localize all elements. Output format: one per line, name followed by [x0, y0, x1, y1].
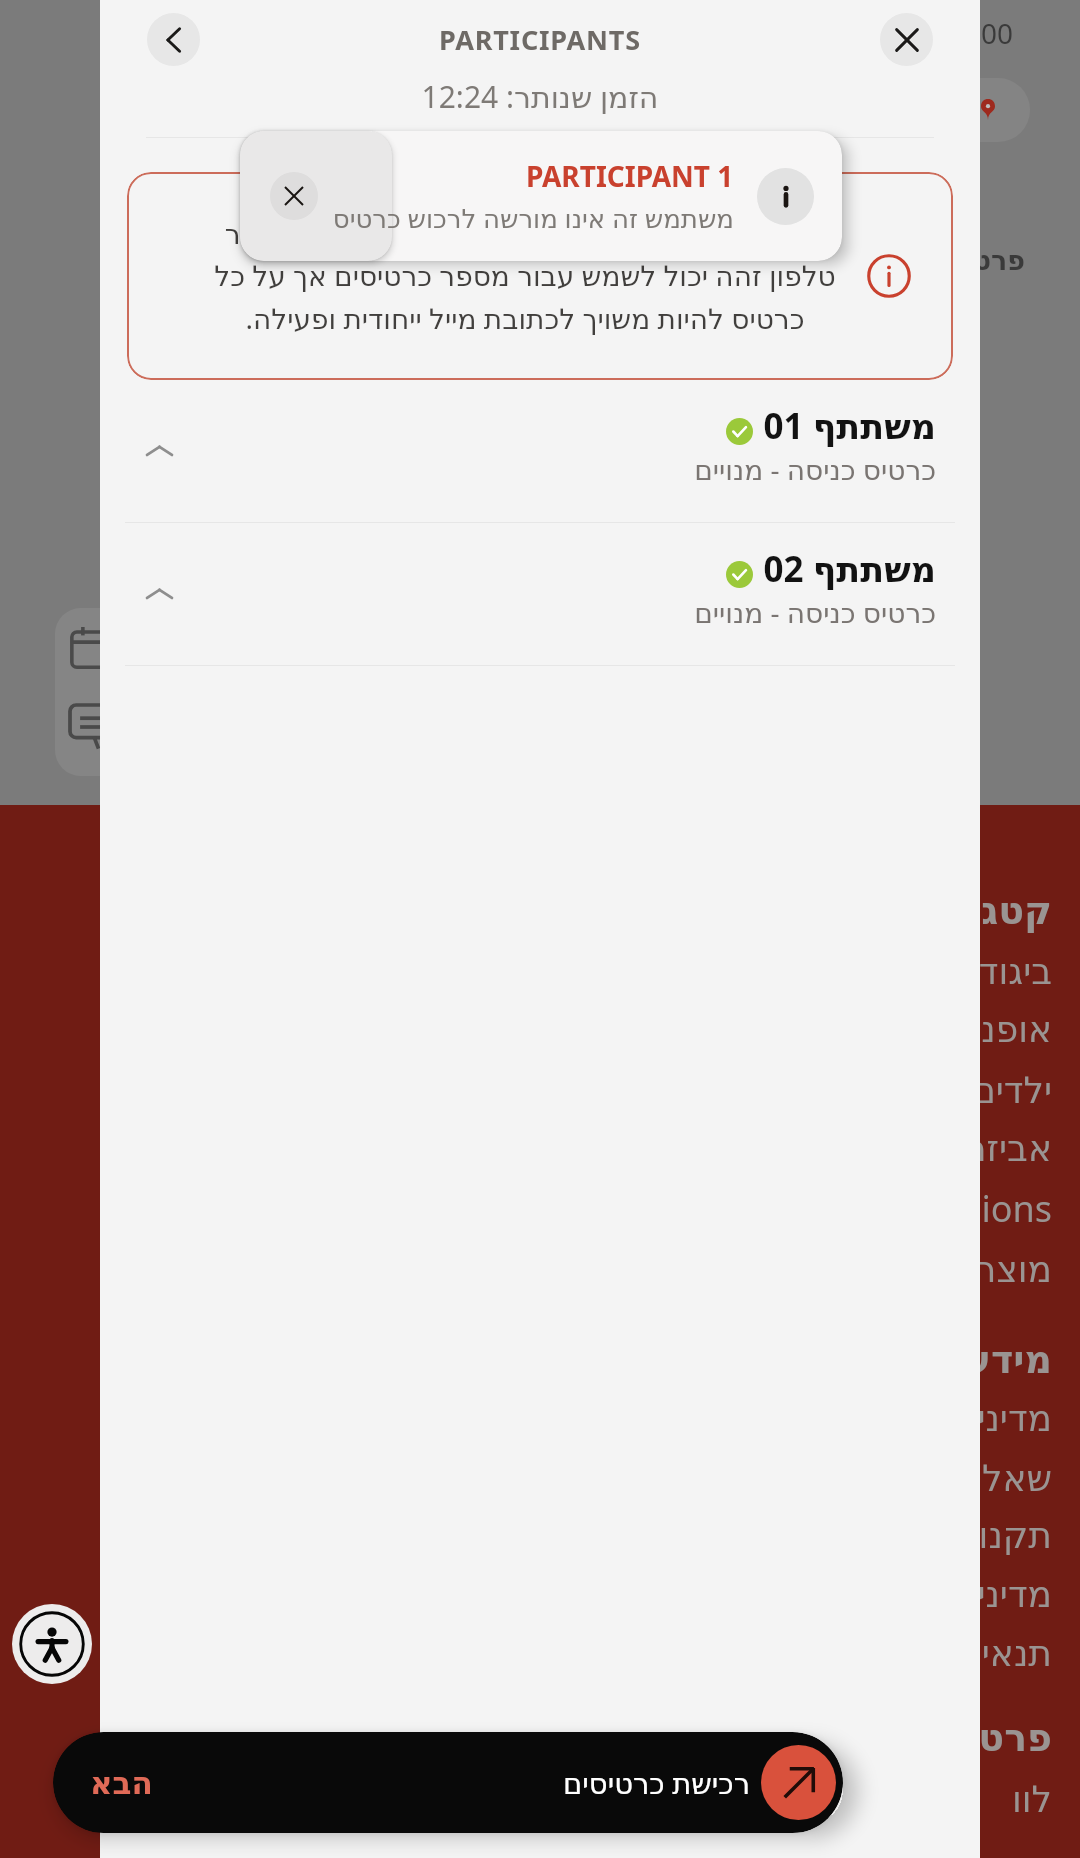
- button[interactable]: הבא: [53, 1732, 843, 1833]
- button[interactable]: משתתף 01: [100, 380, 980, 522]
- staticText: כרטיס כניסה - מנויים: [694, 450, 936, 488]
- button[interactable]: Information: [865, 252, 913, 300]
- staticText: משתתף 02: [763, 545, 936, 593]
- staticText: שימו לב! ניתן לרכוש כרטיסים רבים באמצעות…: [141, 214, 909, 338]
- button[interactable]: Accessibility: [12, 1604, 92, 1684]
- staticText: ביגוד ה: [945, 946, 1052, 995]
- staticText: מדיניות: [943, 1398, 1052, 1440]
- staticText: ילדים ו: [952, 1065, 1052, 1114]
- staticText: מדיניות: [943, 1574, 1052, 1616]
- staticText: הזמן שנותר: 12:24: [100, 76, 980, 117]
- staticText: PARTICIPANT 1: [526, 157, 734, 195]
- staticText: רכישת כרטיסים: [563, 1763, 750, 1802]
- button[interactable]: משתתף 02: [100, 523, 980, 665]
- staticText: PARTICIPANTS: [439, 21, 641, 58]
- staticText: אופנה: [957, 1009, 1052, 1051]
- staticText: מוצרי ה: [935, 1244, 1052, 1293]
- staticText: כרטיס כניסה - מנויים: [694, 593, 936, 631]
- staticText: הבא: [90, 1765, 153, 1801]
- staticText: מידע: [965, 1338, 1052, 1382]
- staticText: פרטי: [967, 1716, 1052, 1760]
- staticText: משתתף 01: [763, 402, 936, 450]
- staticText: פרטים: [945, 245, 1025, 276]
- staticText: pions: [959, 1184, 1052, 1233]
- staticText: לוו: [1011, 1779, 1052, 1821]
- button[interactable]: Dismiss: [240, 131, 392, 261]
- button[interactable]: Close: [880, 13, 933, 66]
- button[interactable]: More information: [757, 168, 814, 225]
- staticText: משתמש זה אינו מורשה לרכוש כרטיס: [332, 200, 734, 235]
- staticText: תקנון: [968, 1515, 1052, 1557]
- staticText: שאלות: [948, 1458, 1052, 1500]
- staticText: קטגוריות: [895, 889, 1052, 933]
- staticText: 00: [981, 14, 1014, 52]
- button[interactable]: Back: [147, 13, 200, 66]
- staticText: תנאי ש: [946, 1628, 1052, 1677]
- staticText: אביזרים: [934, 1128, 1052, 1170]
